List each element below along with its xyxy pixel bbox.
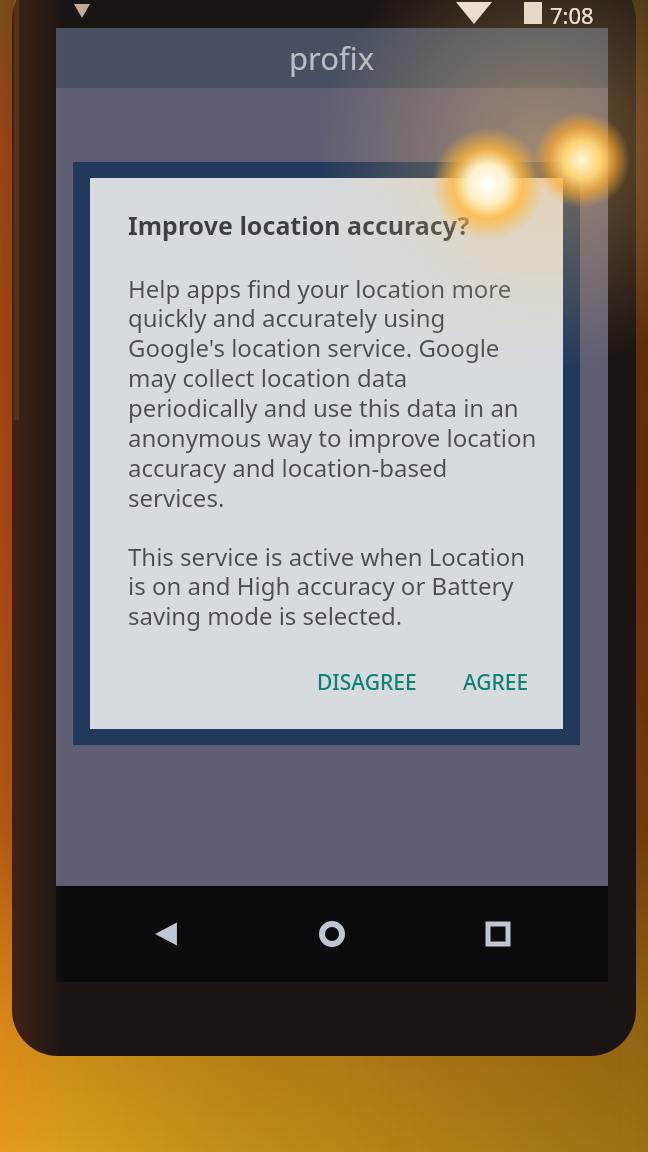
staticText: profix [289,37,375,79]
staticText: DISAGREE [317,668,417,697]
button[interactable]: Recent apps [464,900,532,968]
staticText: AGREE [463,668,529,697]
staticText: Help apps find your location more quickl… [128,272,538,514]
staticText: 7:08 [550,0,594,30]
button[interactable]: DISAGREE [305,658,429,707]
button[interactable]: Back [132,900,200,968]
button[interactable]: Home [298,900,366,968]
button[interactable]: AGREE [451,658,541,707]
staticText: Improve location accuracy? [128,208,470,242]
staticText: This service is active when Location is … [128,540,538,632]
